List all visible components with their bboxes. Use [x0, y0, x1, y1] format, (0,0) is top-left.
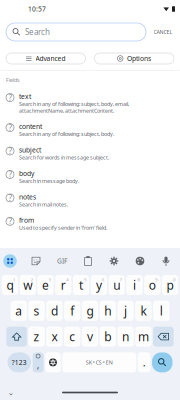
staticText: ?: [8, 122, 11, 133]
button[interactable]: Stickers: [27, 252, 45, 270]
button[interactable]: b: [100, 327, 116, 347]
staticText: ?: [8, 193, 11, 203]
staticText: Search: [25, 27, 50, 37]
staticText: ?: [8, 92, 11, 103]
staticText: 8: [138, 277, 140, 282]
button[interactable]: CANCEL: [146, 23, 180, 41]
staticText: g: [86, 303, 93, 319]
staticText: Fields: [6, 76, 20, 84]
button[interactable]: ?123: [7, 352, 31, 372]
staticText: .: [143, 355, 146, 369]
button[interactable]: Shift: [6, 327, 27, 347]
staticText: Search in mail notes.: [19, 201, 68, 208]
staticText: w: [23, 277, 32, 293]
staticText: Search in message body.: [19, 177, 79, 184]
button[interactable]: Advanced: [6, 53, 85, 64]
button[interactable]: ?: [0, 188, 180, 212]
staticText: attachmentName, attachmentContent.: [19, 107, 114, 114]
button[interactable]: ?: [0, 88, 180, 118]
button[interactable]: w: [20, 275, 36, 295]
button[interactable]: q: [2, 275, 18, 295]
button[interactable]: f: [64, 301, 80, 321]
button[interactable]: c: [64, 327, 80, 347]
staticText: Search in any of following: subject, bod…: [19, 100, 129, 107]
staticText: text: [19, 92, 31, 101]
button[interactable]: Settings: [105, 252, 123, 270]
button[interactable]: s: [28, 301, 45, 321]
button[interactable]: SK • CS • EN: [62, 352, 136, 372]
button[interactable]: g: [82, 301, 98, 321]
button[interactable]: z: [28, 327, 45, 347]
button[interactable]: a: [11, 301, 27, 321]
staticText: GIF: [57, 257, 67, 265]
staticText: d: [51, 303, 58, 319]
button[interactable]: GIF: [53, 252, 71, 270]
button[interactable]: r: [55, 275, 71, 295]
staticText: 10:57: [28, 5, 46, 13]
staticText: c: [69, 329, 75, 344]
staticText: r: [61, 277, 66, 293]
staticText: notes: [19, 192, 36, 201]
button[interactable]: ?: [0, 165, 180, 188]
button[interactable]: k: [135, 301, 151, 321]
staticText: from: [19, 216, 34, 225]
button[interactable]: ?: [0, 212, 180, 235]
staticText: 3: [49, 277, 51, 282]
staticText: s: [34, 303, 40, 319]
button[interactable]: Change keyboard language: [45, 352, 61, 372]
staticText: 9: [155, 277, 157, 282]
staticText: Options: [127, 54, 151, 63]
staticText: u: [113, 277, 120, 293]
staticText: 5: [84, 277, 86, 282]
staticText: Used to specify sender in 'from' field.: [19, 224, 107, 231]
staticText: k: [140, 303, 146, 319]
button[interactable]: o: [144, 275, 160, 295]
button[interactable]: v: [82, 327, 98, 347]
staticText: Search for words in message subject.: [19, 154, 109, 161]
button[interactable]: x: [46, 327, 62, 347]
button[interactable]: .: [138, 352, 150, 372]
button[interactable]: h: [100, 301, 116, 321]
staticText: Search in any of following: subject, bod…: [19, 130, 114, 138]
button[interactable]: Search: [152, 352, 172, 372]
button[interactable]: e: [37, 275, 54, 295]
button[interactable]: Clipboard: [79, 252, 97, 270]
staticText: m: [138, 329, 149, 344]
staticText: n: [122, 329, 129, 344]
button[interactable]: i: [126, 275, 143, 295]
button[interactable]: Voice input: [157, 252, 175, 270]
staticText: p: [167, 277, 174, 293]
staticText: e: [42, 277, 49, 293]
staticText: l: [160, 303, 163, 319]
button[interactable]: Comma and emoji: [33, 352, 44, 372]
staticText: b: [104, 329, 111, 344]
button[interactable]: Backspace: [153, 327, 174, 347]
button[interactable]: j: [117, 301, 134, 321]
staticText: 7: [120, 277, 122, 282]
button[interactable]: d: [46, 301, 62, 321]
staticText: a: [15, 303, 22, 319]
button[interactable]: m: [135, 327, 151, 347]
button[interactable]: l: [153, 301, 169, 321]
button[interactable]: t: [73, 275, 89, 295]
button[interactable]: ?: [0, 141, 180, 165]
staticText: SK • CS • EN: [86, 359, 113, 366]
button[interactable]: Options: [94, 53, 174, 64]
button[interactable]: ?: [0, 118, 180, 141]
staticText: j: [124, 303, 127, 319]
button[interactable]: p: [162, 275, 178, 295]
button[interactable]: y: [91, 275, 107, 295]
button[interactable]: n: [117, 327, 134, 347]
staticText: ?: [8, 169, 11, 180]
staticText: ?123: [12, 358, 27, 367]
staticText: v: [87, 329, 93, 344]
button[interactable]: Search: [6, 23, 146, 41]
staticText: o: [149, 277, 156, 293]
button[interactable]: Hide keyboard: [3, 386, 19, 398]
button[interactable]: Themes: [131, 252, 149, 270]
staticText: 0: [173, 277, 175, 282]
button[interactable]: Emoji: [1, 252, 19, 270]
staticText: t: [79, 277, 83, 293]
staticText: q: [6, 277, 13, 293]
button[interactable]: u: [109, 275, 125, 295]
